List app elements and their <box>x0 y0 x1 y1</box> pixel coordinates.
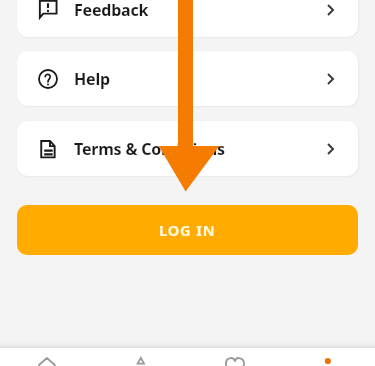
button[interactable]: Trips <box>94 348 188 366</box>
button[interactable]: LOG IN <box>17 205 358 255</box>
staticText: Feedback <box>74 0 149 21</box>
button[interactable]: Help <box>17 51 358 106</box>
staticText: Terms & Conditions <box>74 138 225 160</box>
button[interactable]: Feedback <box>17 0 358 37</box>
staticText: LOG IN <box>159 220 216 240</box>
staticText: Help <box>74 68 110 90</box>
button[interactable]: Favourites <box>188 348 282 366</box>
button[interactable]: Home <box>0 348 94 366</box>
button[interactable]: Terms & Conditions <box>17 121 358 176</box>
button[interactable]: Account <box>281 348 375 366</box>
